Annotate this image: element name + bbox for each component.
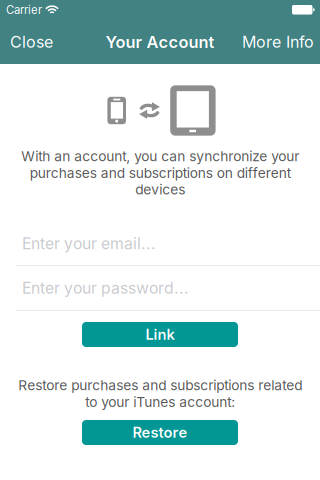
button[interactable]: Close: [0, 20, 63, 64]
staticText: Restore purchases and subscriptions rela…: [18, 377, 302, 410]
button[interactable]: Link: [82, 322, 238, 347]
button[interactable]: Restore: [82, 420, 238, 445]
staticText: Enter your password...: [22, 278, 189, 297]
button[interactable]: More Info: [236, 20, 320, 64]
staticText: With an account, you can synchronize you…: [21, 148, 299, 198]
staticText: Carrier: [6, 3, 42, 17]
staticText: More Info: [242, 32, 314, 52]
staticText: Link: [145, 326, 174, 343]
staticText: Restore: [132, 424, 187, 441]
staticText: Your Account: [105, 32, 214, 52]
staticText: Enter your email...: [22, 234, 156, 253]
staticText: Close: [10, 32, 53, 52]
